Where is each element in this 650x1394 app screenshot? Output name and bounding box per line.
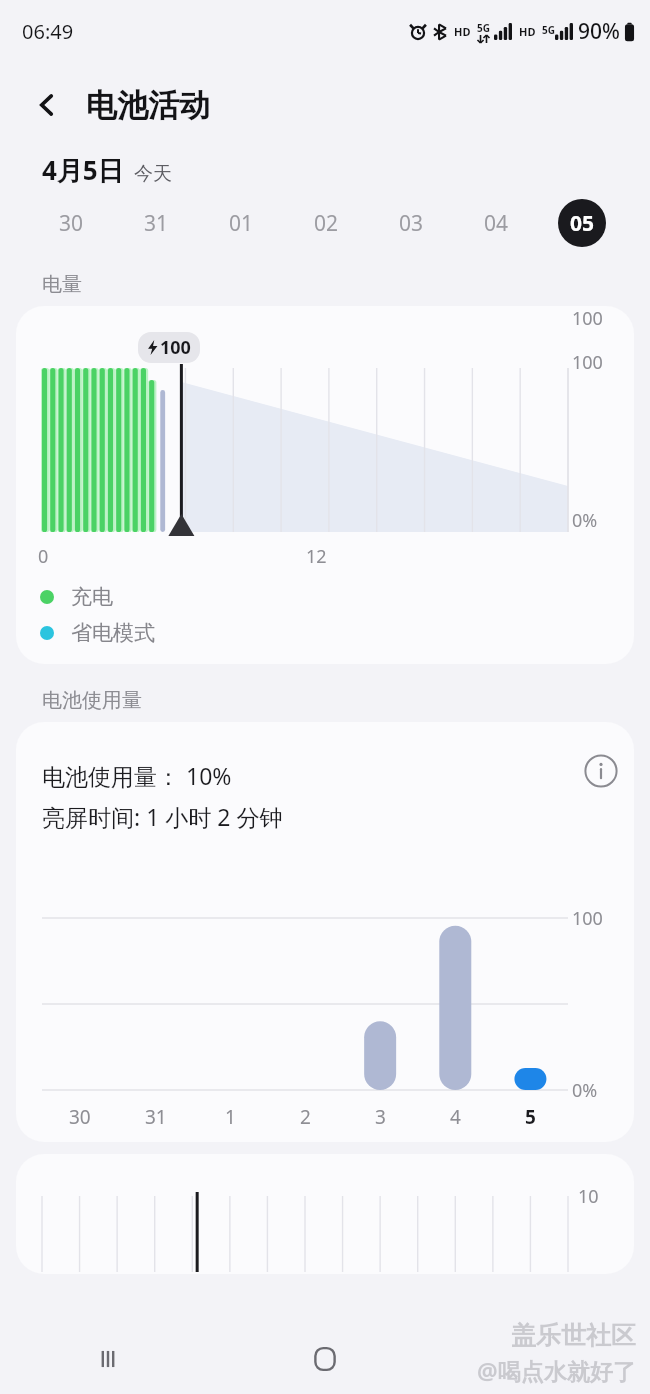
staticText: 100	[160, 335, 191, 360]
staticText: HD	[454, 24, 471, 39]
button[interactable]: 电池使用量： 10%	[16, 722, 634, 1142]
staticText: 1	[225, 1104, 236, 1130]
staticText: 5G	[542, 23, 555, 37]
staticText: 5	[525, 1104, 536, 1130]
staticText: 31	[144, 209, 169, 238]
button[interactable]: Back	[433, 1324, 650, 1394]
button[interactable]: Information	[578, 748, 624, 794]
staticText: 今天	[134, 162, 172, 186]
button[interactable]: 30	[28, 192, 114, 254]
staticText: 4月5日	[42, 152, 124, 188]
staticText: 电量	[42, 272, 82, 297]
staticText: 盖乐世社区	[511, 1320, 636, 1351]
staticText: 亮屏时间: 1 小时 2 分钟	[42, 801, 283, 832]
staticText: 5G	[477, 21, 490, 35]
staticText: 电池活动	[86, 86, 210, 125]
button[interactable]: 02	[284, 192, 369, 254]
staticText: 100	[572, 350, 603, 375]
button[interactable]: 03	[369, 192, 454, 254]
staticText: 31	[145, 1104, 167, 1130]
staticText: 0	[38, 544, 49, 569]
staticText: 30	[69, 1104, 91, 1130]
staticText: 04	[484, 209, 509, 238]
staticText: 12	[306, 544, 327, 569]
staticText: 05	[570, 209, 595, 238]
staticText: 充电	[71, 584, 113, 610]
staticText: 03	[399, 209, 424, 238]
staticText: 06:49	[22, 18, 74, 45]
staticText: 90%	[578, 17, 620, 46]
button[interactable]: 05	[539, 192, 624, 254]
button[interactable]: 31	[114, 192, 199, 254]
staticText: 100	[572, 906, 603, 931]
staticText: 2	[300, 1104, 311, 1130]
staticText: 01	[229, 209, 254, 238]
staticText: 4	[450, 1104, 461, 1130]
staticText: 0%	[572, 1078, 598, 1103]
staticText: 电池使用量： 10%	[42, 760, 232, 791]
staticText: @喝点水就好了	[477, 1355, 636, 1386]
button[interactable]: Recents	[0, 1324, 216, 1394]
staticText: 电池使用量	[42, 688, 142, 713]
staticText: 02	[314, 209, 339, 238]
staticText: 10	[578, 1184, 599, 1209]
button[interactable]: 01	[199, 192, 284, 254]
button[interactable]: Back	[24, 82, 70, 128]
staticText: 3	[375, 1104, 386, 1130]
button[interactable]: Home	[216, 1324, 433, 1394]
staticText: 0%	[572, 508, 598, 533]
staticText: HD	[519, 24, 536, 39]
staticText: 省电模式	[71, 620, 155, 646]
button[interactable]: 04	[454, 192, 539, 254]
staticText: 30	[59, 209, 84, 238]
staticText: 100	[572, 306, 603, 331]
button[interactable]: 100	[16, 306, 634, 664]
